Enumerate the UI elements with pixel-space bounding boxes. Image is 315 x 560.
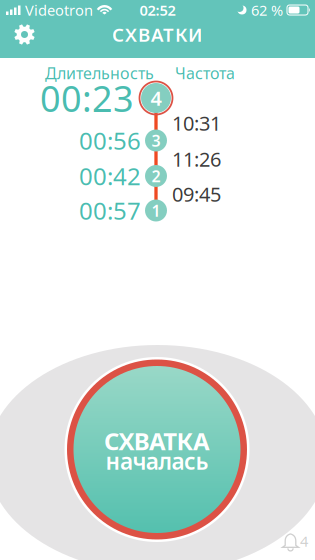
- staticText: 00:23: [40, 74, 134, 122]
- staticText: 00:57: [79, 195, 141, 226]
- staticText: 1: [151, 200, 160, 221]
- staticText: 09:45: [172, 181, 221, 207]
- staticText: 62 %: [251, 0, 283, 20]
- staticText: СХВАТКА: [104, 425, 210, 457]
- staticText: 2: [151, 165, 160, 187]
- staticText: 4: [150, 85, 161, 111]
- button[interactable]: СХВАТКА: [64, 357, 249, 542]
- staticText: 00:42: [79, 160, 141, 192]
- staticText: Videotron: [25, 0, 93, 20]
- staticText: СХВАТКИ: [112, 22, 203, 47]
- staticText: 02:52: [139, 0, 175, 20]
- staticText: 4: [300, 531, 308, 551]
- button[interactable]: Settings: [14, 24, 35, 45]
- staticText: 3: [151, 130, 160, 151]
- staticText: 10:31: [172, 110, 221, 136]
- staticText: 11:26: [172, 146, 221, 172]
- staticText: 00:56: [79, 125, 141, 156]
- staticText: Длительность: [45, 62, 154, 84]
- staticText: началась: [106, 446, 208, 476]
- button[interactable]: Reminders: [282, 531, 308, 551]
- staticText: Частота: [175, 62, 235, 84]
